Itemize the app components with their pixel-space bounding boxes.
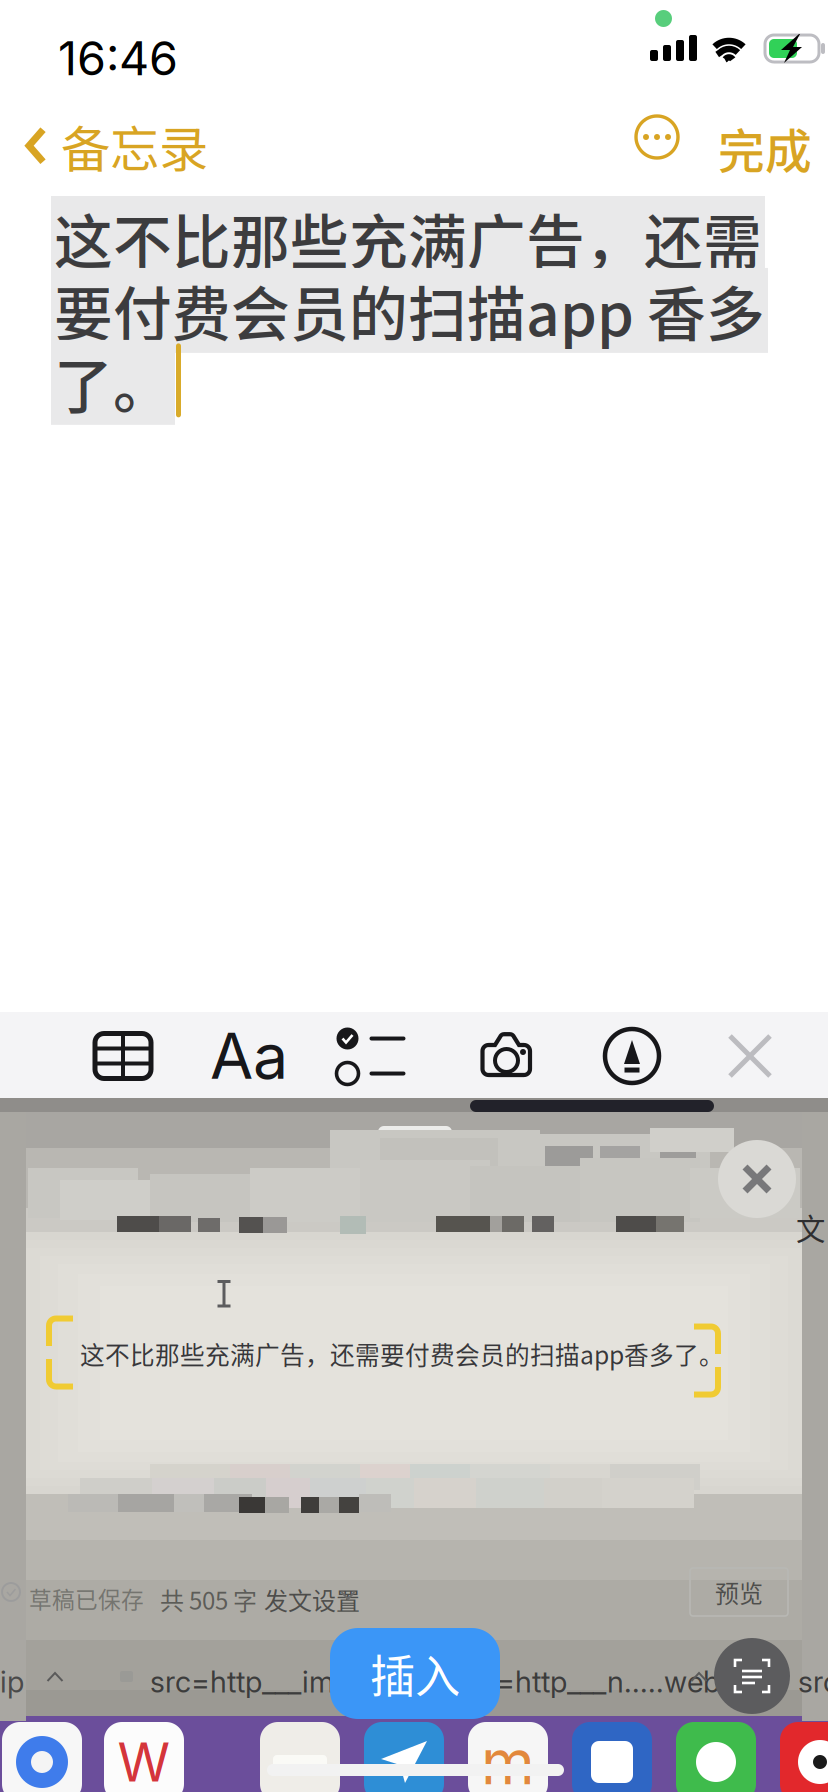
staticText: m [481, 1725, 535, 1792]
staticText: W [117, 1730, 170, 1792]
staticText: src [798, 1664, 828, 1699]
staticText: 这不比那些充满广告，还需 [54, 196, 762, 281]
button[interactable]: Text format [197, 1015, 301, 1097]
button[interactable]: 插入 [330, 1628, 500, 1719]
staticText: 文 [796, 1206, 825, 1248]
staticText: 插入 [370, 1641, 460, 1706]
staticText: =http___n.....webp [496, 1664, 737, 1699]
staticText: 备忘录 [61, 110, 208, 181]
button[interactable]: Checklist [319, 1015, 423, 1097]
staticText: 16:46 [58, 30, 178, 86]
staticText: Aa [210, 1018, 288, 1094]
button[interactable]: 完成 [700, 100, 828, 196]
staticText: 共 505 字 [160, 1582, 257, 1617]
button[interactable]: Table [71, 1015, 175, 1097]
button[interactable]: More options [620, 100, 694, 174]
staticText: 草稿已保存 [29, 1582, 144, 1615]
button[interactable]: 备忘录 [10, 98, 226, 193]
staticText: 这不比那些充满广告，还需要付费会员的扫描app香多了。 [80, 1336, 724, 1372]
button[interactable]: Dismiss keyboard [698, 1015, 802, 1097]
staticText: 要付费会员的扫描app 香多 [54, 268, 765, 353]
staticText: 预览 [715, 1575, 763, 1609]
button[interactable]: Camera [455, 1015, 559, 1097]
button[interactable]: Markup [580, 1015, 684, 1097]
staticText: 了。 [54, 340, 172, 425]
staticText: src=http___im....web [150, 1664, 422, 1699]
staticText: 完成 [718, 114, 812, 182]
staticText: 发文设置 [264, 1582, 360, 1617]
staticText: ip [0, 1664, 24, 1699]
